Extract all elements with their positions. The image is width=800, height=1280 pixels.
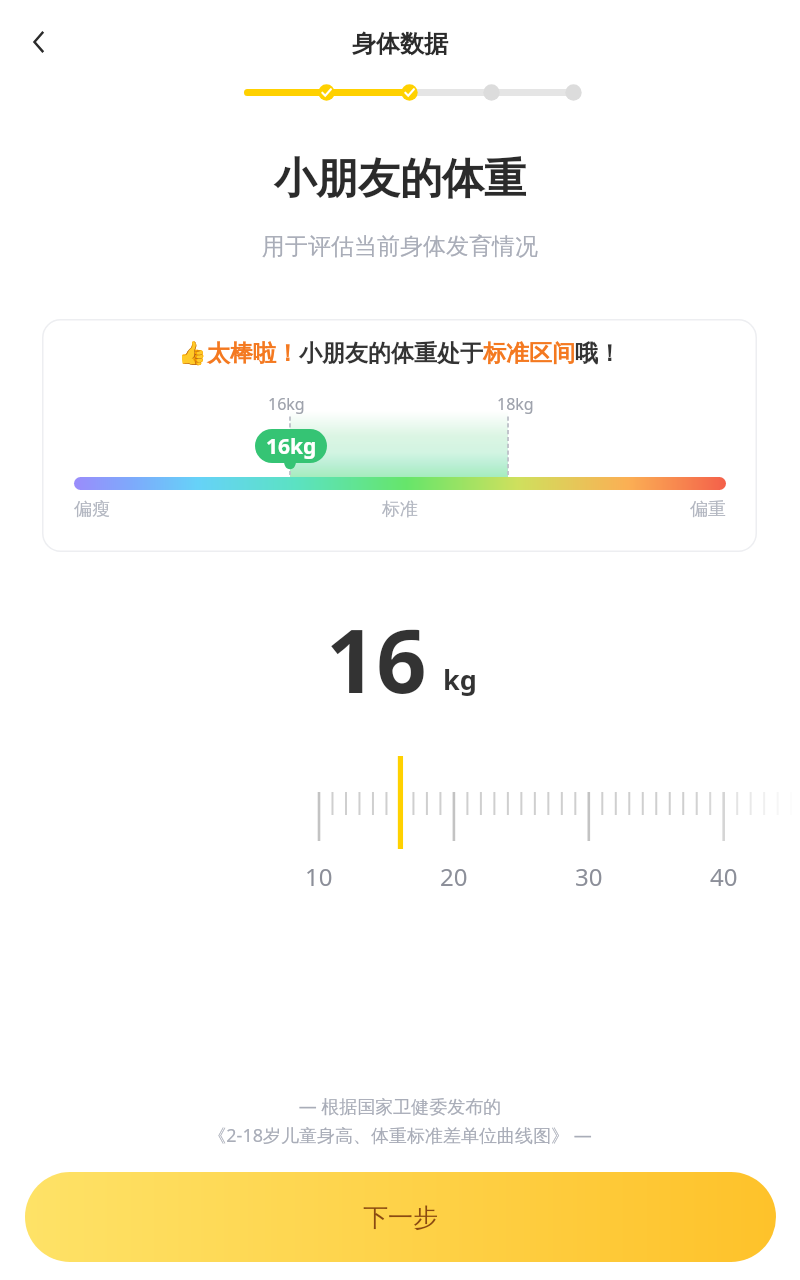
staticText: 18kg xyxy=(497,393,534,415)
button[interactable]: 下一步 xyxy=(25,1172,776,1262)
staticText: 用于评估当前身体发育情况 xyxy=(0,232,800,261)
staticText: 偏重 xyxy=(690,498,726,521)
staticText: 30 xyxy=(575,860,603,893)
staticText: 👍 xyxy=(178,340,207,367)
button[interactable]: Weight scale, 16 kg xyxy=(0,750,800,900)
staticText: 身体数据 xyxy=(0,29,800,59)
staticText: kg xyxy=(443,661,477,698)
button[interactable]: Back xyxy=(16,19,62,65)
staticText: 太棒啦！小朋友的体重处于标准区间哦！ xyxy=(207,339,621,368)
staticText: 16 xyxy=(326,599,427,719)
staticText: 《2-18岁儿童身高、体重标准差单位曲线图》 — xyxy=(0,1123,800,1148)
staticText: 下一步 xyxy=(363,1202,438,1233)
staticText: 20 xyxy=(440,860,468,893)
staticText: 偏瘦 xyxy=(74,498,110,521)
staticText: 40 xyxy=(710,860,738,893)
staticText: 小朋友的体重 xyxy=(0,153,800,206)
staticText: 10 xyxy=(305,860,333,893)
staticText: 16kg xyxy=(268,393,305,415)
staticText: — 根据国家卫健委发布的 xyxy=(0,1094,800,1119)
staticText: 标准 xyxy=(382,498,418,521)
staticText: 16kg xyxy=(266,432,317,461)
